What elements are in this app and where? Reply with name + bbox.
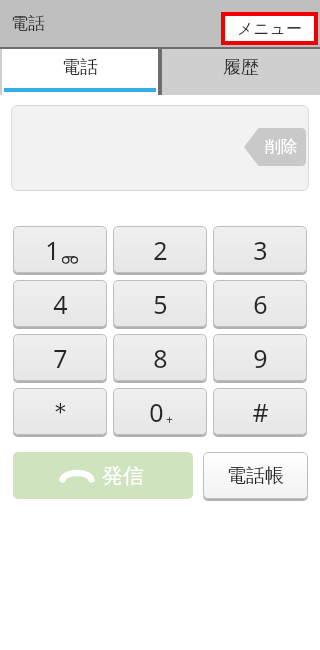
staticText: 履歴 xyxy=(223,56,259,79)
button[interactable]: 削除 xyxy=(244,128,306,166)
button[interactable]: 8 xyxy=(113,334,207,381)
staticText: 7 xyxy=(53,341,68,375)
staticText: 6 xyxy=(253,287,268,321)
button[interactable]: 履歴 xyxy=(162,47,320,95)
button[interactable]: 2 xyxy=(113,226,207,273)
staticText: 1 xyxy=(45,233,60,267)
button[interactable]: 電話帳 xyxy=(203,452,308,499)
button[interactable]: # xyxy=(213,388,307,435)
staticText: 発信 xyxy=(102,463,144,489)
staticText: 3 xyxy=(253,233,268,267)
staticText: 2 xyxy=(153,233,168,267)
button[interactable]: 7 xyxy=(13,334,107,381)
button[interactable]: 5 xyxy=(113,280,207,327)
staticText: + xyxy=(166,411,173,427)
staticText: 9 xyxy=(253,341,268,375)
staticText: 電話帳 xyxy=(227,464,284,488)
button[interactable]: 9 xyxy=(213,334,307,381)
staticText: 5 xyxy=(153,287,168,321)
button[interactable]: 電話 xyxy=(2,47,158,95)
staticText: 4 xyxy=(53,287,68,321)
button[interactable]: 1 xyxy=(13,226,107,273)
button[interactable]: 3 xyxy=(213,226,307,273)
staticText: 電話 xyxy=(11,13,45,34)
staticText: 電話 xyxy=(62,56,98,79)
staticText: 8 xyxy=(153,341,168,375)
staticText: メニュー xyxy=(237,19,303,39)
staticText: 0 xyxy=(149,395,164,429)
staticText: ＊ xyxy=(48,396,73,427)
button[interactable]: 4 xyxy=(13,280,107,327)
button[interactable]: 6 xyxy=(213,280,307,327)
button[interactable]: ＊ xyxy=(13,388,107,435)
staticText: # xyxy=(252,395,269,429)
button[interactable]: 0 xyxy=(113,388,207,435)
button[interactable]: 発信 xyxy=(13,452,193,499)
button[interactable]: メニュー xyxy=(225,16,314,41)
staticText: 削除 xyxy=(265,137,297,157)
